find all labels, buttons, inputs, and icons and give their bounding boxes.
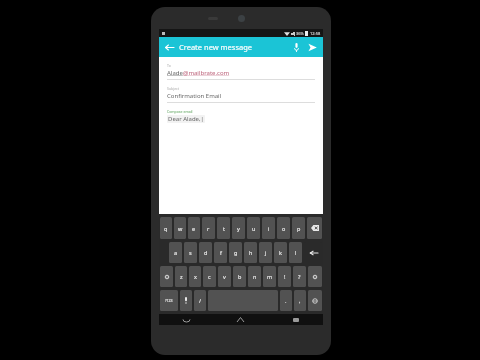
- button[interactable]: b: [233, 266, 246, 287]
- staticText: s: [189, 249, 192, 256]
- button[interactable]: c: [203, 266, 216, 287]
- button[interactable]: Home: [213, 314, 268, 325]
- button[interactable]: q: [160, 217, 172, 239]
- button[interactable]: Voice input: [289, 37, 303, 57]
- button[interactable]: x: [189, 266, 201, 287]
- button[interactable]: Language: [308, 290, 322, 311]
- staticText: m: [267, 273, 273, 280]
- staticText: y: [237, 225, 240, 232]
- staticText: x: [194, 273, 197, 280]
- button[interactable]: ?123: [160, 290, 178, 311]
- button[interactable]: g: [229, 242, 242, 263]
- button[interactable]: r: [202, 217, 215, 239]
- button[interactable]: .: [280, 290, 292, 311]
- button[interactable]: Shift: [160, 266, 173, 287]
- staticText: w: [178, 225, 183, 232]
- staticText: Subject: [167, 86, 180, 91]
- staticText: Alade: [167, 69, 183, 77]
- staticText: /: [199, 297, 202, 304]
- button[interactable]: w: [174, 217, 186, 239]
- staticText: j: [265, 249, 267, 256]
- staticText: o: [282, 225, 286, 232]
- button[interactable]: z: [175, 266, 187, 287]
- staticText: c: [208, 273, 211, 280]
- staticText: !: [284, 273, 286, 280]
- staticText: 36%: [296, 31, 304, 36]
- staticText: q: [164, 225, 168, 232]
- button[interactable]: Back: [159, 37, 179, 57]
- staticText: z: [180, 273, 183, 280]
- staticText: e: [192, 225, 196, 232]
- button[interactable]: v: [218, 266, 231, 287]
- staticText: d: [204, 249, 208, 256]
- button[interactable]: m: [263, 266, 276, 287]
- staticText: f: [220, 249, 222, 256]
- staticText: ?123: [165, 298, 173, 303]
- button[interactable]: d: [199, 242, 212, 263]
- button[interactable]: Backspace: [307, 217, 322, 239]
- staticText: p: [297, 225, 301, 232]
- button[interactable]: l: [289, 242, 302, 263]
- staticText: ,: [299, 297, 301, 304]
- button[interactable]: Shift: [308, 266, 322, 287]
- button[interactable]: /: [194, 290, 206, 311]
- button[interactable]: Voice: [180, 290, 192, 311]
- button[interactable]: Send: [303, 37, 321, 57]
- button[interactable]: u: [247, 217, 260, 239]
- staticText: Create new message: [179, 42, 289, 52]
- staticText: Confirmation Email: [167, 92, 222, 100]
- button[interactable]: o: [277, 217, 290, 239]
- button[interactable]: ,: [294, 290, 306, 311]
- button[interactable]: ?: [293, 266, 306, 287]
- button[interactable]: a: [169, 242, 182, 263]
- button[interactable]: Recents: [268, 314, 323, 325]
- staticText: k: [279, 249, 282, 256]
- button[interactable]: t: [217, 217, 230, 239]
- staticText: a: [174, 249, 178, 256]
- button[interactable]: Enter: [304, 242, 322, 263]
- button[interactable]: Back: [159, 314, 213, 325]
- staticText: 12:58: [310, 31, 321, 36]
- button[interactable]: !: [278, 266, 291, 287]
- staticText: Dear Alade,|: [168, 115, 204, 123]
- button[interactable]: y: [232, 217, 245, 239]
- staticText: r: [207, 225, 210, 232]
- staticText: i: [268, 225, 270, 232]
- staticText: b: [238, 273, 242, 280]
- staticText: t: [223, 225, 225, 232]
- staticText: v: [223, 273, 226, 280]
- button[interactable]: k: [274, 242, 287, 263]
- staticText: l: [295, 249, 297, 256]
- button[interactable]: p: [292, 217, 305, 239]
- button[interactable]: n: [248, 266, 261, 287]
- staticText: g: [234, 249, 238, 256]
- button[interactable]: i: [262, 217, 275, 239]
- staticText: n: [253, 273, 257, 280]
- button[interactable]: s: [184, 242, 197, 263]
- staticText: .: [285, 297, 287, 304]
- staticText: ?: [298, 273, 301, 280]
- button[interactable]: f: [214, 242, 227, 263]
- staticText: u: [252, 225, 256, 232]
- staticText: @mailbrate.com: [183, 69, 230, 77]
- staticText: Compose email: [167, 109, 193, 114]
- staticText: h: [249, 249, 253, 256]
- staticText: To: [167, 63, 171, 68]
- button[interactable]: j: [259, 242, 272, 263]
- button[interactable]: e: [188, 217, 200, 239]
- button[interactable]: h: [244, 242, 257, 263]
